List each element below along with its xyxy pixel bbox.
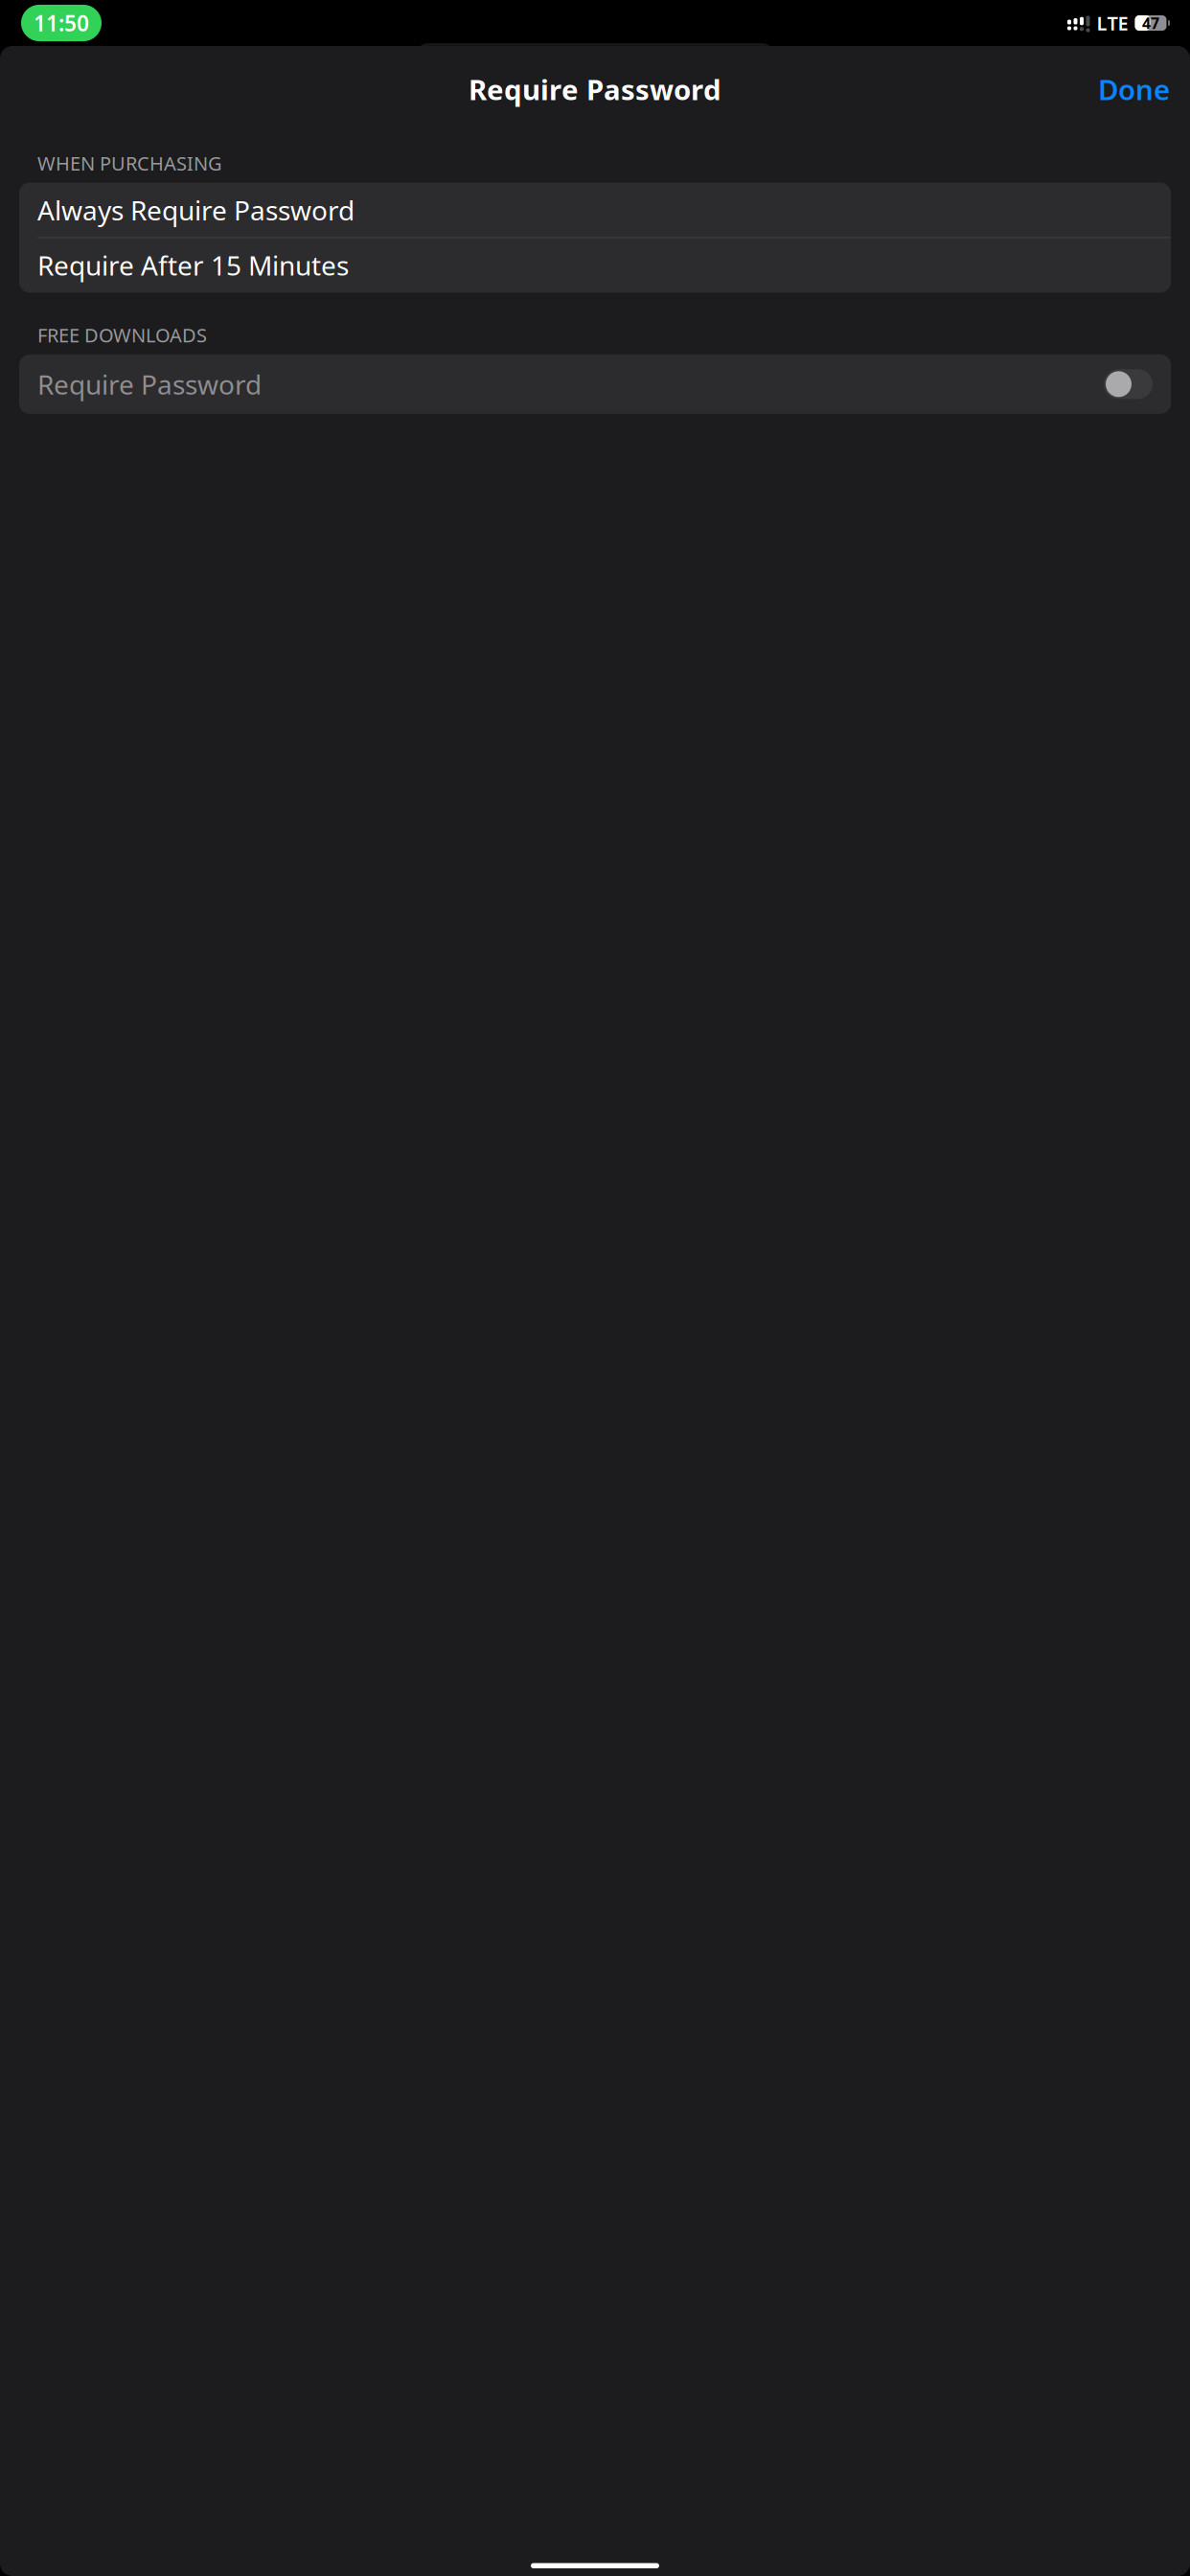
button[interactable]: Always Require Password [19, 183, 1171, 237]
staticText: Always Require Password [37, 192, 355, 228]
staticText: WHEN PURCHASING [37, 150, 222, 176]
button[interactable]: Done [1090, 63, 1178, 115]
staticText: FREE DOWNLOADS [37, 322, 207, 348]
staticText: Done [1098, 70, 1170, 108]
staticText: 11:50 [34, 9, 89, 37]
staticText: LTE [1097, 10, 1128, 36]
button[interactable]: Require After 15 Minutes [19, 238, 1171, 293]
staticText: 47 [1142, 13, 1159, 33]
button[interactable]: Require Password [19, 354, 1171, 414]
staticText: Require Password [37, 366, 262, 402]
staticText: Require After 15 Minutes [37, 247, 349, 283]
staticText: Require Password [469, 70, 721, 108]
